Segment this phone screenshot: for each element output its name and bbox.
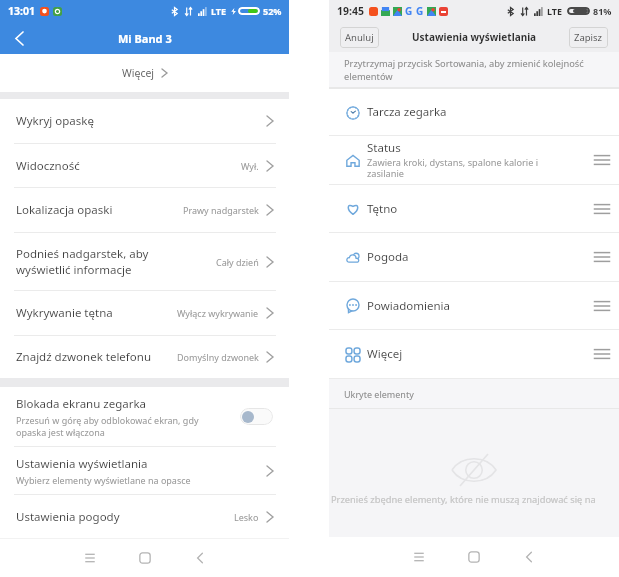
staticText: 81% [593, 5, 612, 17]
button[interactable]: Reorder [591, 246, 613, 268]
button[interactable]: Toggle screen lock [240, 408, 273, 425]
button[interactable]: Home [456, 539, 492, 575]
button[interactable]: Back [6, 25, 32, 51]
staticText: Ustawienia wyświetlania [412, 30, 537, 44]
button[interactable]: Lokalizacja opaski [0, 188, 289, 232]
button[interactable]: Więcej [329, 330, 619, 378]
staticText: Wykrywanie tętna [16, 305, 113, 321]
button[interactable]: Anuluj [340, 27, 379, 48]
button[interactable]: Ustawienia wyświetlania [0, 447, 289, 494]
staticText: opaska jest włączona [16, 426, 105, 438]
staticText: G [405, 4, 413, 18]
staticText: Zapisz [574, 31, 603, 44]
staticText: Tętno [367, 201, 398, 217]
button[interactable]: Tarcza zegarka [329, 89, 619, 135]
button[interactable]: Wykrywanie tętna [0, 291, 289, 335]
staticText: Zawiera kroki, dystans, spalone kalorie … [367, 156, 539, 180]
staticText: Lokalizacja opaski [16, 202, 113, 218]
staticText: Prawy nadgarstek [183, 204, 259, 216]
staticText: Wyłącz wykrywanie [177, 307, 259, 319]
button[interactable]: Powiadomienia [329, 282, 619, 329]
staticText: Status [367, 140, 401, 156]
button[interactable]: Recent apps [401, 539, 437, 575]
staticText: Powiadomienia [367, 298, 450, 314]
button[interactable]: Podnieś nadgarstek, aby [0, 233, 289, 290]
button[interactable]: Znajdź dzwonek telefonu [0, 336, 289, 378]
staticText: wyświetlić informacje [16, 262, 132, 278]
staticText: Mi Band 3 [118, 31, 172, 46]
staticText: Widoczność [16, 158, 80, 174]
staticText: Więcej [367, 346, 403, 362]
button[interactable]: Home [127, 540, 163, 576]
staticText: Tarcza zegarka [367, 104, 447, 120]
button[interactable]: Zapisz [569, 27, 608, 48]
staticText: Podnieś nadgarstek, aby [16, 246, 149, 262]
staticText: Więcej [122, 66, 155, 80]
staticText: 13:01 [8, 4, 35, 18]
staticText: Przesuń w górę aby odblokować ekran, gdy [16, 414, 199, 426]
button[interactable]: Reorder [591, 149, 613, 171]
staticText: Ukryte elementy [344, 388, 414, 400]
staticText: Blokada ekranu zegarka [16, 396, 147, 412]
button[interactable]: Wykryj opaskę [0, 99, 289, 143]
staticText: Lesko [234, 511, 259, 523]
staticText: Przytrzymaj przycisk Sortowania, aby zmi… [344, 57, 584, 70]
button[interactable]: Recent apps [72, 540, 108, 576]
button[interactable]: Blokada ekranu zegarka [0, 387, 289, 446]
staticText: Wył. [241, 160, 259, 172]
staticText: 52% [263, 5, 282, 17]
staticText: Anuluj [345, 31, 374, 44]
staticText: 19:45 [337, 4, 364, 18]
button[interactable]: Reorder [591, 198, 613, 220]
staticText: G [416, 4, 424, 18]
button[interactable]: Pogoda [329, 233, 619, 281]
button[interactable]: Ustawienia pogody [0, 495, 289, 538]
staticText: Przenieś zbędne elementy, które nie musz… [331, 493, 596, 506]
staticText: Wybierz elementy wyświetlane na opasce [16, 474, 191, 486]
staticText: Ustawienia pogody [16, 509, 120, 525]
staticText: elementów [344, 70, 393, 83]
button[interactable]: Reorder [591, 295, 613, 317]
button[interactable]: Tętno [329, 185, 619, 232]
staticText: Cały dzień [216, 256, 259, 268]
button[interactable]: Widoczność [0, 144, 289, 187]
button[interactable]: Status [329, 136, 619, 184]
button[interactable]: Back [511, 539, 547, 575]
button[interactable]: Więcej [0, 54, 289, 92]
button[interactable]: Back [182, 540, 218, 576]
staticText: Domyślny dzwonek [177, 351, 259, 363]
staticText: Znajdź dzwonek telefonu [16, 349, 151, 365]
staticText: Ustawienia wyświetlania [16, 456, 148, 472]
staticText: Pogoda [367, 249, 409, 265]
staticText: LTE [547, 5, 563, 17]
staticText: LTE [211, 5, 227, 17]
staticText: Wykryj opaskę [16, 113, 94, 129]
button[interactable]: Reorder [591, 343, 613, 365]
